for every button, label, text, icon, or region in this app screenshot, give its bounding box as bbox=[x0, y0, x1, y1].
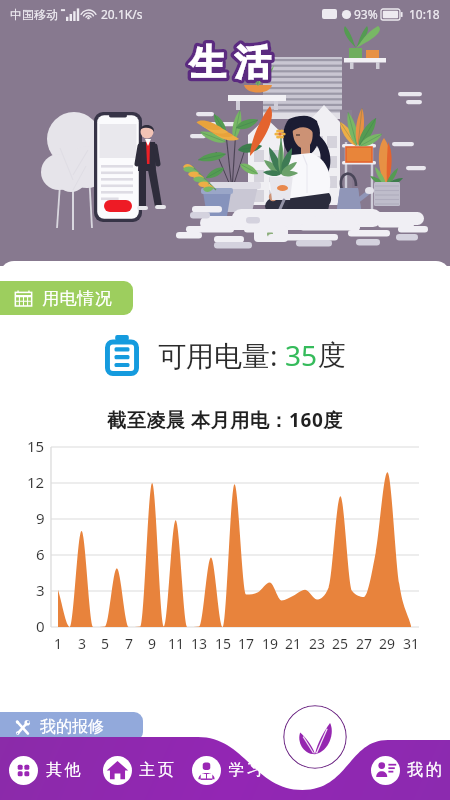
staticText: 7 bbox=[125, 634, 134, 653]
staticText: 我的报修 bbox=[40, 717, 104, 737]
button[interactable]: 我的报修 bbox=[0, 712, 143, 741]
staticText: 3 bbox=[78, 634, 87, 653]
staticText: 10:18 bbox=[409, 6, 440, 22]
button[interactable]: Add plant bbox=[283, 705, 347, 769]
staticText: 15 bbox=[27, 436, 45, 456]
staticText: 25 bbox=[332, 634, 349, 653]
staticText: 6 bbox=[36, 544, 45, 564]
staticText: 主页 bbox=[138, 760, 175, 780]
staticText: 29 bbox=[379, 634, 396, 653]
staticText: 20.1K/s bbox=[101, 6, 143, 22]
button[interactable]: 其他 bbox=[5, 753, 87, 787]
button[interactable]: 用电情况 bbox=[0, 281, 133, 315]
button[interactable]: 主页 bbox=[99, 753, 180, 787]
staticText: 15 bbox=[215, 634, 232, 653]
staticText: 93% bbox=[354, 6, 378, 22]
staticText: 19 bbox=[262, 634, 279, 653]
button[interactable]: 我的 bbox=[367, 753, 448, 787]
staticText: 用电情况 bbox=[42, 288, 112, 309]
staticText: 9 bbox=[148, 634, 157, 653]
button[interactable]: 学习 bbox=[188, 753, 269, 787]
staticText: 17 bbox=[238, 634, 255, 653]
staticText: 31 bbox=[403, 634, 420, 653]
staticText: 度 bbox=[318, 338, 346, 373]
staticText: 截至凌晨 本月用电：160度 bbox=[0, 407, 450, 433]
staticText: 1 bbox=[54, 634, 63, 653]
staticText: 13 bbox=[191, 634, 208, 653]
staticText: 学习 bbox=[227, 760, 264, 780]
staticText: 23 bbox=[309, 634, 326, 653]
staticText: 我的 bbox=[406, 760, 443, 780]
staticText: 0 bbox=[36, 616, 45, 636]
staticText: 12 bbox=[27, 472, 45, 492]
staticText: 27 bbox=[356, 634, 373, 653]
staticText: 3 bbox=[36, 580, 45, 600]
staticText: 可用电量: bbox=[158, 336, 285, 374]
staticText: 其他 bbox=[45, 760, 82, 780]
staticText: 35 bbox=[285, 336, 318, 374]
staticText: 21 bbox=[285, 634, 302, 653]
staticText: 9 bbox=[36, 508, 45, 528]
staticText: 生活 bbox=[185, 40, 275, 85]
staticText: 11 bbox=[168, 634, 185, 653]
staticText: 中国移动 bbox=[10, 7, 58, 22]
staticText: 5 bbox=[101, 634, 110, 653]
staticText: 生活 bbox=[185, 40, 275, 85]
